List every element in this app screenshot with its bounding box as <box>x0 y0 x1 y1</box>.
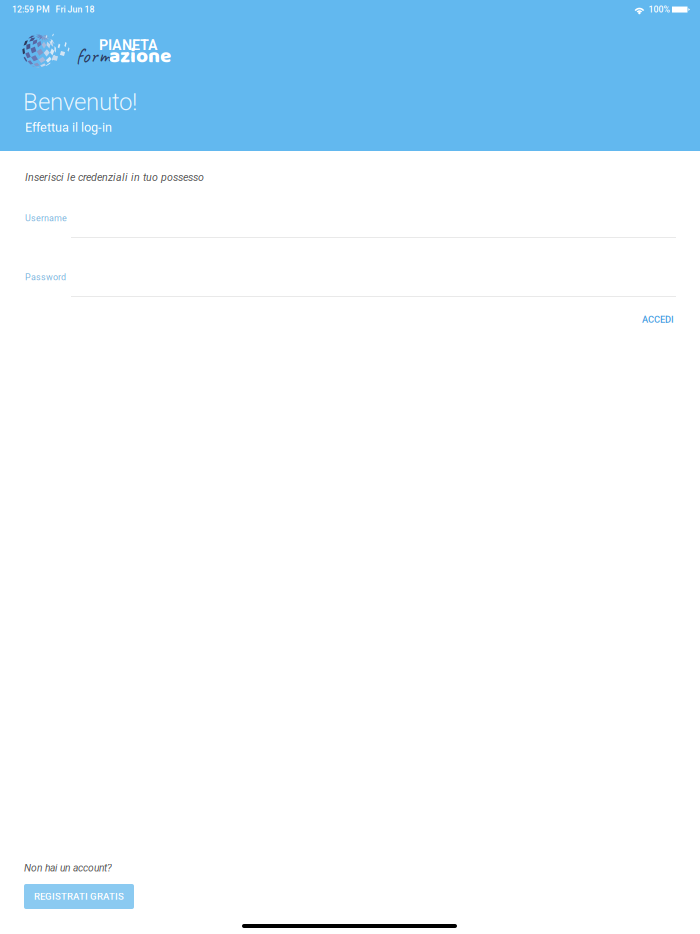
button[interactable]: REGISTRATI GRATIS <box>24 884 134 909</box>
staticText: PIANETA <box>99 37 158 54</box>
staticText: Non hai un account? <box>24 862 112 874</box>
staticText: Password <box>25 272 66 282</box>
staticText: azione <box>109 40 171 73</box>
staticText: REGISTRATI GRATIS <box>34 891 124 902</box>
staticText: 12:59 PM <box>12 4 50 15</box>
staticText: form <box>76 42 110 69</box>
staticText: Fri Jun 18 <box>55 4 94 15</box>
button[interactable]: ACCEDI <box>634 308 682 331</box>
staticText: Benvenuto! <box>23 88 137 116</box>
staticText: Effettua il log-in <box>25 120 112 135</box>
staticText: 100% <box>648 4 669 15</box>
staticText: Username <box>25 213 67 223</box>
staticText: Inserisci le credenziali in tuo possesso <box>25 171 204 183</box>
staticText: ACCEDI <box>642 314 674 325</box>
